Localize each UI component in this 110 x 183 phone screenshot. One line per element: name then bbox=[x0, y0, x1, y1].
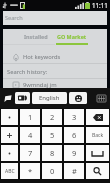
button[interactable]: 6 bbox=[64, 127, 84, 143]
button[interactable] bbox=[1, 145, 18, 161]
button[interactable]: * bbox=[20, 163, 40, 179]
button[interactable]: Search bbox=[86, 163, 109, 179]
button[interactable]: Backspace bbox=[86, 109, 109, 125]
staticText: # bbox=[72, 166, 77, 176]
staticText: 1 bbox=[28, 112, 33, 122]
staticText: 3 bbox=[72, 112, 77, 122]
button[interactable]: Space bbox=[86, 145, 109, 161]
staticText: ABC bbox=[5, 168, 15, 175]
staticText: 8 bbox=[50, 148, 55, 158]
staticText: Search bbox=[5, 14, 23, 22]
button[interactable]: Hot keywords bbox=[3, 45, 107, 63]
button[interactable]: Search bbox=[3, 11, 107, 25]
button[interactable]: Keyboard layout bbox=[95, 92, 107, 104]
button[interactable]: 0 bbox=[42, 163, 62, 179]
staticText: 4 bbox=[28, 130, 33, 140]
staticText: Search history: bbox=[7, 68, 48, 76]
staticText: GO Market bbox=[57, 33, 87, 40]
staticText: 11:11 bbox=[92, 1, 108, 9]
staticText: 7 bbox=[28, 148, 33, 158]
button[interactable]: 7 bbox=[20, 145, 40, 161]
button[interactable]: 5 bbox=[42, 127, 62, 143]
staticText: Hot keywords bbox=[23, 53, 61, 61]
button[interactable]: Emoji bbox=[69, 92, 87, 104]
button[interactable] bbox=[1, 109, 18, 125]
button[interactable]: 2 bbox=[42, 109, 62, 125]
button[interactable] bbox=[1, 127, 18, 143]
button[interactable]: English bbox=[32, 92, 67, 104]
button[interactable]: Input method bbox=[15, 92, 30, 104]
staticText: * bbox=[28, 166, 33, 176]
button[interactable]: Back bbox=[86, 127, 109, 143]
button[interactable]: 9 bbox=[64, 145, 84, 161]
button[interactable]: GO Keyboard bbox=[2, 92, 14, 104]
button[interactable]: Installed bbox=[3, 29, 55, 45]
button[interactable]: GO Market bbox=[55, 29, 107, 45]
button[interactable]: 4 bbox=[20, 127, 40, 143]
staticText: Back bbox=[92, 132, 104, 139]
button[interactable]: 3 bbox=[64, 109, 84, 125]
staticText: Installed bbox=[24, 33, 48, 40]
button[interactable]: 1 bbox=[20, 109, 40, 125]
button[interactable]: 8 bbox=[42, 145, 62, 161]
staticText: 5 bbox=[50, 130, 55, 140]
staticText: 0 bbox=[50, 166, 55, 176]
staticText: 9 bbox=[72, 148, 77, 158]
staticText: 6 bbox=[72, 130, 77, 140]
button[interactable]: ABC bbox=[1, 163, 18, 179]
staticText: English bbox=[39, 94, 60, 102]
staticText: 2 bbox=[50, 112, 55, 122]
staticText: 9wmndaj jm bbox=[23, 81, 57, 88]
button[interactable]: 9wmndaj jm bbox=[3, 79, 107, 88]
button[interactable]: # bbox=[64, 163, 84, 179]
